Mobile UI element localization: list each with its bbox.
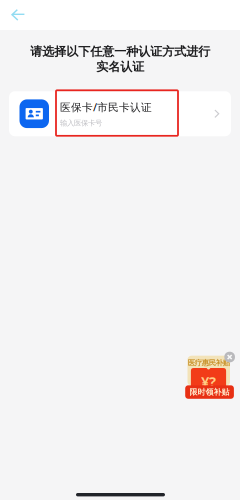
staticText: 医疗惠民补贴 <box>188 358 230 367</box>
staticText: 输入医保卡号 <box>60 118 102 128</box>
staticText: 医保卡/市民卡认证 <box>60 100 152 114</box>
staticText: 请选择以下任意一种认证方式进行实名认证 <box>30 44 210 74</box>
button[interactable]: Back <box>3 0 33 30</box>
button[interactable]: 限时领补贴 <box>187 356 236 399</box>
button[interactable]: Close <box>224 352 235 362</box>
staticText: 限时领补贴 <box>189 387 229 397</box>
staticText: ¥? <box>201 372 216 392</box>
button[interactable]: 医保卡/市民卡认证 <box>9 91 231 136</box>
